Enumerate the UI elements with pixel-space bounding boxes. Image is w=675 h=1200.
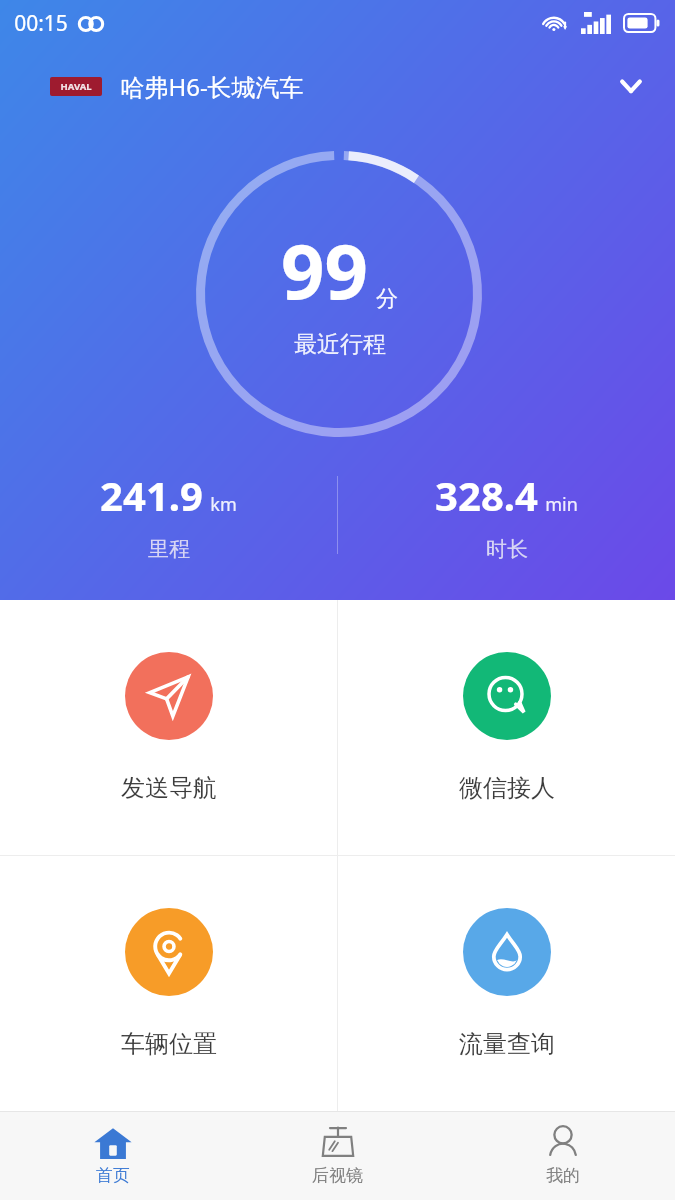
button[interactable]: 流量查询 (338, 856, 675, 1111)
staticText: 分 (376, 285, 398, 313)
staticText: 发送导航 (121, 773, 217, 803)
button[interactable]: 后视镜 (225, 1112, 450, 1200)
staticText: 后视镜 (312, 1165, 363, 1186)
button[interactable]: 车辆位置 (0, 856, 337, 1111)
staticText: 微信接人 (459, 773, 555, 803)
staticText: min (545, 492, 578, 517)
staticText: km (210, 492, 237, 517)
button[interactable]: 发送导航 (0, 600, 337, 855)
staticText: 里程 (148, 536, 190, 562)
staticText: 哈弗H6-长城汽车 (120, 70, 304, 103)
button[interactable]: 我的 (450, 1112, 675, 1200)
staticText: 首页 (96, 1165, 130, 1186)
staticText: 最近行程 (294, 330, 386, 359)
button[interactable]: Select vehicle (609, 64, 653, 108)
button[interactable]: 微信接人 (338, 600, 675, 855)
staticText: 时长 (486, 536, 528, 562)
staticText: 我的 (546, 1165, 580, 1186)
staticText: 00:15 (14, 9, 68, 38)
staticText: 99 (281, 218, 368, 322)
button[interactable]: 首页 (0, 1112, 225, 1200)
staticText: HAVAL (60, 80, 92, 93)
staticText: 流量查询 (459, 1029, 555, 1059)
staticText: 241.9 (100, 468, 203, 522)
button[interactable]: HAVAL (0, 62, 675, 110)
staticText: 328.4 (435, 468, 538, 522)
staticText: 车辆位置 (121, 1029, 217, 1059)
